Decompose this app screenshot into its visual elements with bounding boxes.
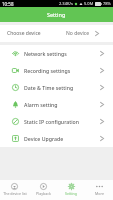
staticText: More [95,191,104,196]
staticText: Setting [47,11,66,18]
staticText: Network settings [24,50,67,57]
staticText: Setting [65,191,77,196]
staticText: Date & Time setting [24,84,74,91]
staticText: The device list [3,191,27,196]
staticText: Playback [36,191,51,196]
staticText: 2.34K/s [59,1,73,6]
other: Playback [40,183,47,190]
staticText: 5.0M [84,1,94,6]
button[interactable]: Network settings [0,45,113,62]
button[interactable]: Choose device [0,25,113,42]
button[interactable]: More [85,180,113,200]
button[interactable]: Recording settings [0,62,113,79]
staticText: 78% [103,1,111,6]
button[interactable]: Alarm setting [0,96,113,113]
button[interactable]: The device list [0,180,29,200]
button[interactable]: Date & Time setting [0,79,113,96]
other: The device list [11,183,18,190]
staticText: No device [66,30,89,37]
other: More [96,183,103,190]
staticText: Choose device [7,30,41,37]
button[interactable]: Setting [57,180,85,200]
other: Setting [68,183,75,190]
staticText: Static IP configuration [24,118,79,125]
staticText: Recording settings [24,67,71,74]
staticText: 10:58 [2,1,14,7]
staticText: Device Upgrade [24,135,64,142]
staticText: Alarm setting [24,101,58,108]
button[interactable]: Static IP configuration [0,113,113,130]
button[interactable]: Playback [29,180,57,200]
button[interactable]: Device Upgrade [0,130,113,147]
